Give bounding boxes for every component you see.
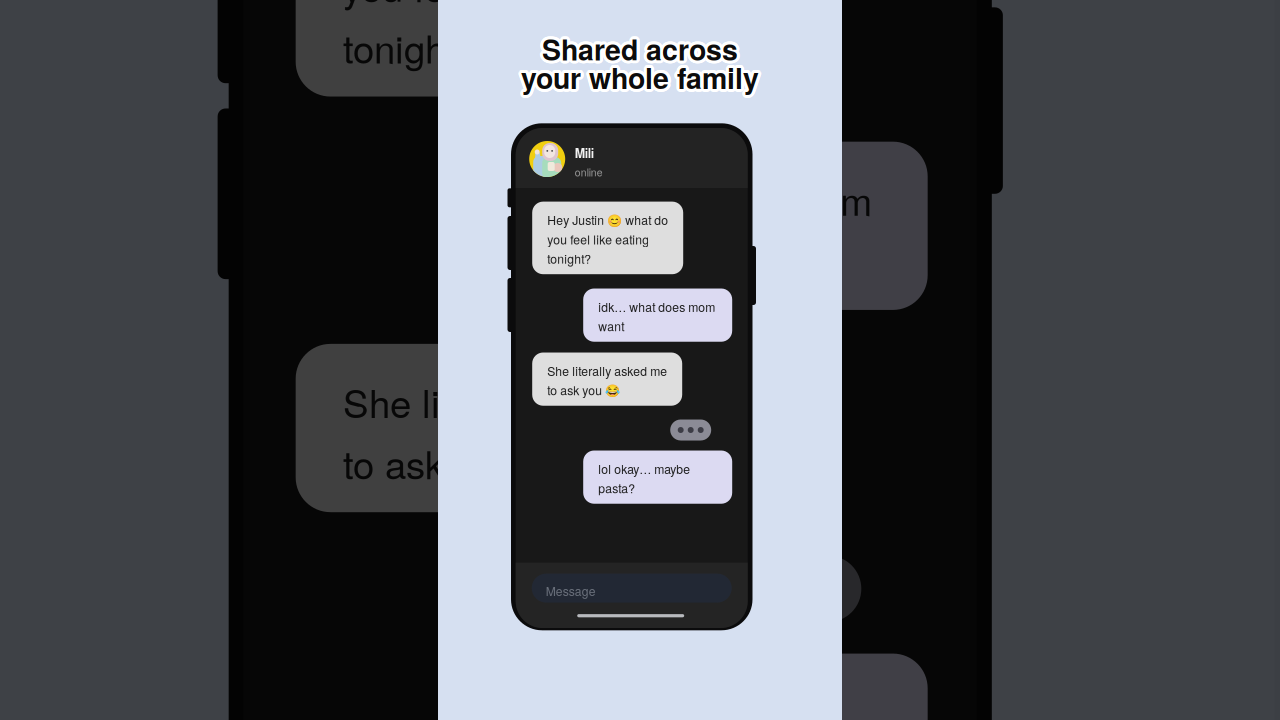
staticText: your whole family bbox=[524, 56, 762, 97]
staticText: your whole family bbox=[519, 57, 757, 97]
staticText: Shared across bbox=[539, 27, 735, 68]
staticText: Shared across bbox=[539, 30, 735, 71]
staticText: Shared across bbox=[544, 31, 740, 71]
staticText: want bbox=[504, 233, 584, 288]
staticText: Shared across bbox=[545, 29, 741, 70]
staticText: Message bbox=[546, 582, 596, 599]
staticText: your whole family bbox=[522, 56, 760, 96]
staticText: you feel like eating bbox=[343, 0, 658, 13]
staticText: Shared across bbox=[539, 29, 735, 70]
staticText: your whole family bbox=[524, 55, 762, 96]
button[interactable]: idk… what does mom bbox=[457, 142, 928, 310]
staticText: your whole family bbox=[518, 56, 756, 97]
staticText: Shared across bbox=[545, 27, 741, 68]
staticText: your whole family bbox=[524, 58, 762, 98]
button[interactable]: Mili bbox=[516, 128, 748, 188]
staticText: your whole family bbox=[521, 55, 759, 96]
staticText: your whole family bbox=[523, 57, 761, 98]
staticText: Shared across bbox=[543, 31, 739, 72]
staticText: Shared across bbox=[544, 29, 740, 70]
staticText: your whole family bbox=[520, 60, 758, 101]
button[interactable]: Message bbox=[532, 574, 732, 603]
staticText: your whole family bbox=[519, 57, 757, 98]
staticText: your whole family bbox=[521, 55, 759, 96]
staticText: your whole family bbox=[523, 55, 761, 96]
staticText: lol okay… maybe bbox=[598, 460, 690, 477]
staticText: want bbox=[598, 317, 624, 335]
staticText: Shared across bbox=[543, 26, 739, 66]
staticText: Shared across bbox=[544, 28, 740, 69]
staticText: your whole family bbox=[521, 59, 759, 99]
staticText: Shared across bbox=[545, 28, 741, 68]
staticText: Shared across bbox=[540, 28, 736, 69]
staticText: your whole family bbox=[522, 56, 760, 96]
button[interactable]: lol okay… maybe bbox=[583, 450, 732, 504]
staticText: your whole family bbox=[520, 58, 758, 99]
staticText: Shared across bbox=[540, 26, 736, 67]
staticText: Shared across bbox=[543, 30, 739, 71]
staticText: Shared across bbox=[541, 30, 737, 70]
staticText: idk… what does mom bbox=[504, 172, 872, 227]
staticText: your whole family bbox=[520, 54, 758, 95]
staticText: She literally asked me bbox=[343, 374, 716, 429]
staticText: your whole family bbox=[521, 55, 759, 96]
staticText: Shared across bbox=[539, 28, 735, 68]
staticText: your whole family bbox=[520, 56, 758, 97]
staticText: your whole family bbox=[518, 58, 756, 98]
staticText: your whole family bbox=[522, 58, 760, 99]
staticText: Shared across bbox=[543, 26, 739, 67]
button[interactable]: lol okay… maybe bbox=[457, 654, 928, 720]
staticText: your whole family bbox=[521, 54, 759, 95]
staticText: Shared across bbox=[541, 26, 737, 66]
staticText: Shared across bbox=[539, 28, 735, 69]
staticText: your whole family bbox=[521, 60, 759, 101]
staticText: your whole family bbox=[520, 58, 758, 98]
staticText: Shared across bbox=[543, 30, 739, 70]
staticText: your whole family bbox=[524, 57, 762, 98]
staticText: Shared across bbox=[544, 28, 740, 69]
staticText: Shared across bbox=[540, 29, 736, 70]
staticText: your whole family bbox=[519, 54, 757, 95]
staticText: Shared across bbox=[545, 28, 741, 69]
staticText: Shared across bbox=[543, 27, 739, 68]
staticText: your whole family bbox=[523, 59, 761, 100]
staticText: your whole family bbox=[522, 58, 760, 99]
staticText: your whole family bbox=[523, 57, 761, 98]
staticText: your whole family bbox=[519, 57, 757, 98]
staticText: you feel like eating bbox=[547, 230, 649, 248]
button[interactable]: She literally asked me bbox=[532, 352, 682, 406]
staticText: Shared across bbox=[541, 27, 737, 68]
button[interactable]: idk… what does mom bbox=[583, 288, 732, 342]
staticText: your whole family bbox=[522, 54, 760, 95]
staticText: your whole family bbox=[522, 56, 760, 97]
staticText: Shared across bbox=[542, 27, 738, 68]
staticText: your whole family bbox=[519, 60, 757, 100]
staticText: Shared across bbox=[541, 31, 737, 72]
staticText: your whole family bbox=[519, 59, 757, 100]
staticText: to ask you 😂 bbox=[547, 381, 620, 399]
staticText: your whole family bbox=[521, 59, 759, 99]
staticText: Mili bbox=[575, 144, 594, 162]
staticText: your whole family bbox=[518, 55, 756, 96]
button[interactable]: Hey Justin 😊 what do bbox=[296, 0, 773, 97]
staticText: your whole family bbox=[524, 58, 762, 99]
staticText: tonight? bbox=[343, 19, 478, 74]
staticText: tonight? bbox=[547, 250, 591, 267]
staticText: idk… what does mom bbox=[598, 298, 715, 315]
staticText: Shared across bbox=[542, 30, 738, 71]
staticText: your whole family bbox=[522, 54, 760, 95]
staticText: your whole family bbox=[520, 58, 758, 99]
staticText: Shared across bbox=[543, 31, 739, 72]
staticText: pasta? bbox=[598, 479, 635, 497]
staticText: Shared across bbox=[541, 29, 737, 70]
staticText: Shared across bbox=[542, 28, 738, 69]
staticText: your whole family bbox=[518, 57, 756, 98]
button[interactable]: Hey Justin 😊 what do bbox=[532, 202, 683, 274]
staticText: Shared across bbox=[541, 30, 737, 71]
staticText: Shared across bbox=[542, 27, 738, 68]
button[interactable]: She literally asked me bbox=[296, 344, 766, 512]
staticText: Shared across bbox=[540, 26, 736, 67]
staticText: Shared across bbox=[543, 27, 739, 68]
staticText: Shared across bbox=[544, 26, 740, 67]
staticText: your whole family bbox=[520, 56, 758, 96]
